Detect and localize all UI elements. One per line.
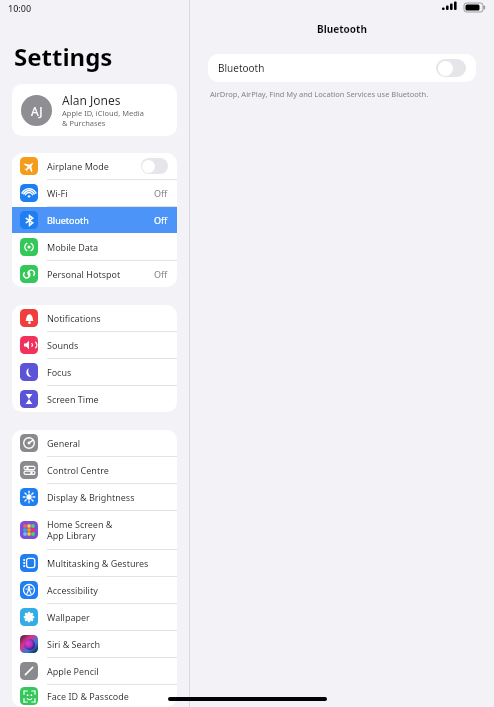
staticText: Settings <box>14 40 113 73</box>
button[interactable]: Face ID & Passcode <box>12 685 177 707</box>
staticText: Bluetooth <box>218 61 436 75</box>
staticText: Screen Time <box>47 393 168 405</box>
staticText: Bluetooth <box>190 22 494 36</box>
staticText: AJ <box>31 103 43 119</box>
staticText: General <box>47 437 168 449</box>
button[interactable]: Accessibility <box>12 577 177 603</box>
button[interactable]: General <box>12 430 177 456</box>
staticText: Face ID & Passcode <box>47 690 168 702</box>
button[interactable]: Display & Brightness <box>12 484 177 510</box>
staticText: Focus <box>47 366 168 378</box>
button[interactable]: Sounds <box>12 332 177 358</box>
staticText: Accessibility <box>47 584 168 596</box>
staticText: Control Centre <box>47 464 168 476</box>
button[interactable]: Airplane Mode <box>12 153 177 179</box>
staticText: Wi-Fi <box>47 187 154 199</box>
button[interactable]: Notifications <box>12 305 177 331</box>
button[interactable]: Home Screen & App Library <box>12 511 177 549</box>
button[interactable]: Toggle <box>141 158 168 174</box>
staticText: Apple Pencil <box>47 665 168 677</box>
button[interactable]: Apple Pencil <box>12 658 177 684</box>
staticText: Mobile Data <box>47 241 168 253</box>
button[interactable]: Focus <box>12 359 177 385</box>
staticText: Airplane Mode <box>47 160 141 172</box>
button[interactable]: Wi-Fi <box>12 180 177 206</box>
button[interactable]: Screen Time <box>12 386 177 412</box>
staticText: AirDrop, AirPlay, Find My and Location S… <box>210 89 429 99</box>
button[interactable]: Personal Hotspot <box>12 261 177 287</box>
button[interactable]: Siri & Search <box>12 631 177 657</box>
staticText: Off <box>154 214 168 226</box>
button[interactable]: AJ <box>12 84 177 136</box>
button[interactable]: Bluetooth <box>208 54 476 82</box>
button[interactable]: Multitasking & Gestures <box>12 550 177 576</box>
staticText: Sounds <box>47 339 168 351</box>
button[interactable]: Bluetooth <box>12 207 177 233</box>
staticText: Alan Jones <box>62 92 121 108</box>
staticText: Wallpaper <box>47 611 168 623</box>
button[interactable]: Control Centre <box>12 457 177 483</box>
staticText: Personal Hotspot <box>47 268 154 280</box>
staticText: Apple ID, iCloud, Media & Purchases <box>62 108 144 128</box>
staticText: Bluetooth <box>47 214 154 226</box>
staticText: 10:00 <box>8 2 32 14</box>
staticText: Home Screen & App Library <box>47 518 168 542</box>
staticText: Display & Brightness <box>47 491 168 503</box>
staticText: Off <box>154 187 168 199</box>
staticText: Notifications <box>47 312 168 324</box>
button[interactable]: Wallpaper <box>12 604 177 630</box>
staticText: Off <box>154 268 168 280</box>
button[interactable]: Mobile Data <box>12 234 177 260</box>
staticText: Siri & Search <box>47 638 168 650</box>
staticText: Multitasking & Gestures <box>47 557 168 569</box>
